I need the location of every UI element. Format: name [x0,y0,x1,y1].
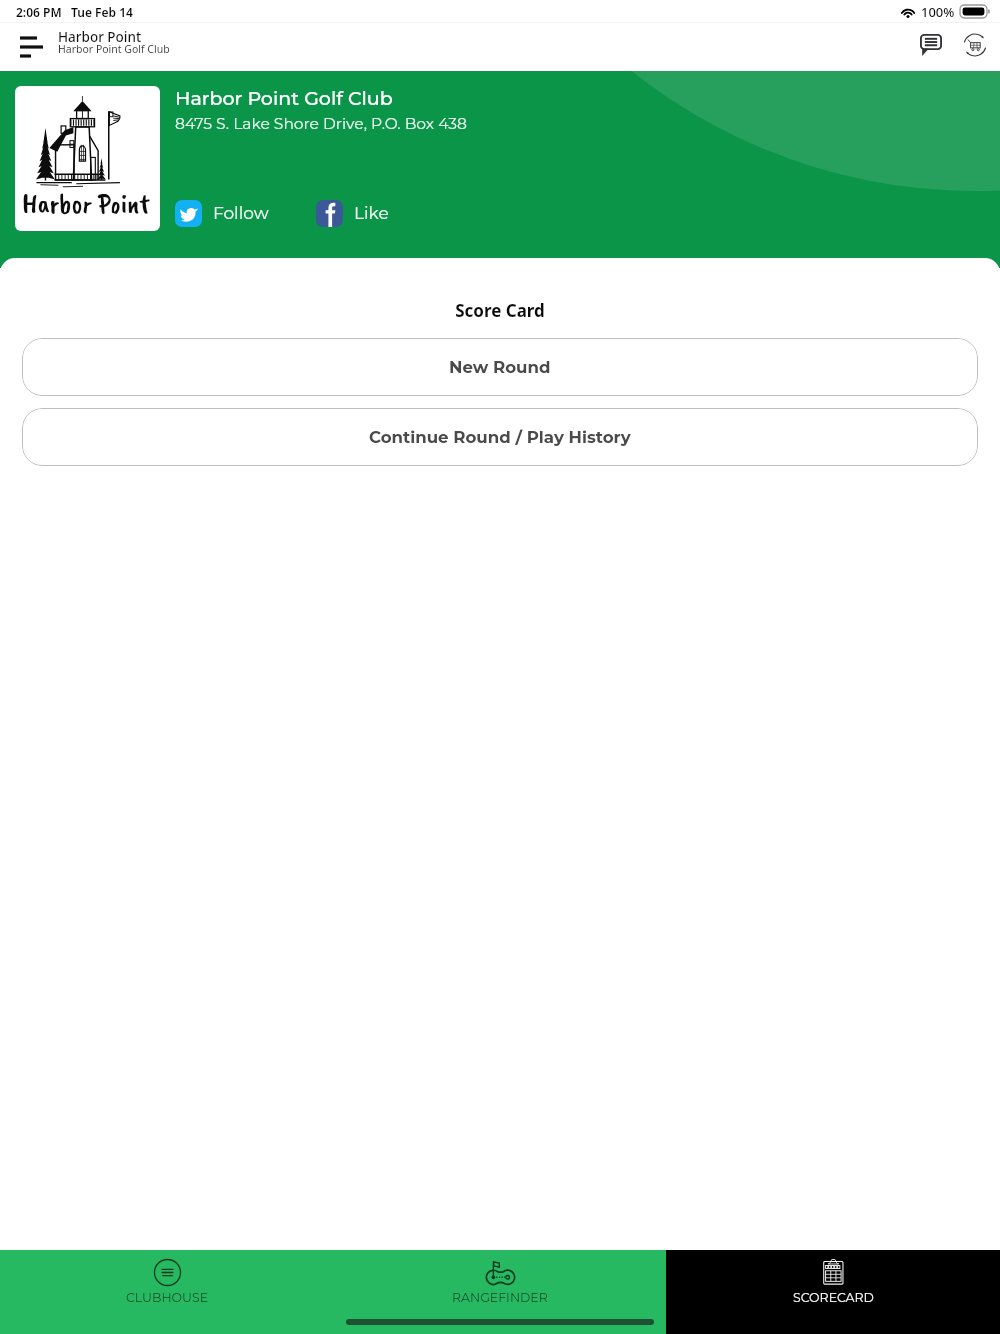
button[interactable]: Pro shop cart [956,28,994,66]
staticText: New Round [449,357,551,377]
staticText: Follow [213,203,269,224]
button[interactable]: Open navigation menu [14,29,50,65]
staticText: RANGEFINDER [452,1290,548,1305]
button[interactable]: SCORECARD [666,1250,1000,1334]
staticText: 100% [921,3,955,21]
button[interactable]: New Round [22,338,978,396]
staticText: 2:06 PM [16,4,62,20]
staticText: Harbor Point [22,186,150,221]
staticText: SCORECARD [793,1290,874,1305]
staticText: Continue Round / Play History [369,427,631,447]
button[interactable]: Messages [912,28,950,66]
staticText: Harbor Point Golf Club [175,87,393,110]
button[interactable]: Continue Round / Play History [22,408,978,466]
staticText: 8475 S. Lake Shore Drive, P.O. Box 438 [175,114,467,133]
button[interactable]: Like [316,200,389,227]
staticText: Harbor Point [58,28,142,46]
staticText: Harbor Point Golf Club [58,42,170,56]
button[interactable]: Follow [175,200,269,227]
button[interactable]: CLUBHOUSE [0,1250,333,1334]
button[interactable]: RANGEFINDER [333,1250,666,1334]
staticText: Like [354,203,389,224]
staticText: Tue Feb 14 [71,4,133,20]
staticText: CLUBHOUSE [126,1290,208,1305]
staticText: Score Card [0,299,1000,322]
